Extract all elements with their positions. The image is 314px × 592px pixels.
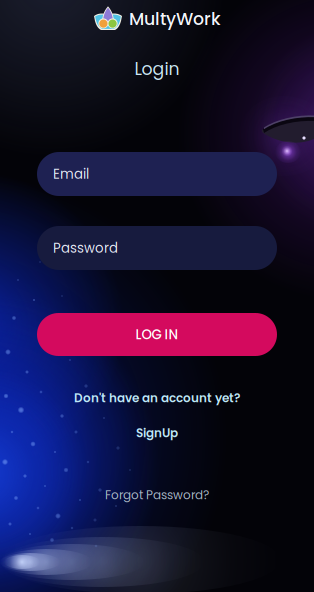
staticText: Forgot Password? [105, 487, 209, 503]
button[interactable]: Forgot Password? [0, 487, 314, 503]
button[interactable]: Email [37, 152, 277, 196]
staticText: LOG IN [135, 325, 178, 344]
button[interactable]: Don't have an account yet? [0, 390, 314, 406]
staticText: Don't have an account yet? [74, 390, 240, 406]
button[interactable]: SignUp [0, 425, 314, 441]
staticText: Email [53, 165, 89, 183]
button[interactable]: LOG IN [37, 313, 277, 356]
button[interactable]: Password [37, 226, 277, 270]
staticText: Login [134, 57, 179, 81]
staticText: Password [53, 239, 118, 257]
staticText: SignUp [136, 425, 178, 441]
staticText: MultyWork [129, 7, 221, 31]
